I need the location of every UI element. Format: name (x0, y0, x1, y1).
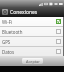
staticText: Conexiones (10, 9, 38, 16)
other: Desactivado (56, 39, 61, 44)
other: Activado (56, 19, 61, 24)
button[interactable]: Datos (0, 47, 64, 56)
staticText: Wi-Fi (2, 19, 56, 25)
staticText: Aceptar (26, 59, 40, 64)
staticText: Bluetooth (2, 29, 56, 35)
button[interactable]: Bluetooth (0, 27, 64, 36)
other: Desactivado (56, 49, 61, 54)
button[interactable]: Wi-Fi (0, 17, 64, 26)
staticText: Datos (2, 49, 56, 55)
other: Desactivado (56, 29, 61, 34)
button[interactable]: GPS (0, 37, 64, 46)
other: App icon (2, 9, 8, 15)
staticText: GPS (2, 39, 56, 45)
button[interactable]: Aceptar (22, 58, 43, 64)
